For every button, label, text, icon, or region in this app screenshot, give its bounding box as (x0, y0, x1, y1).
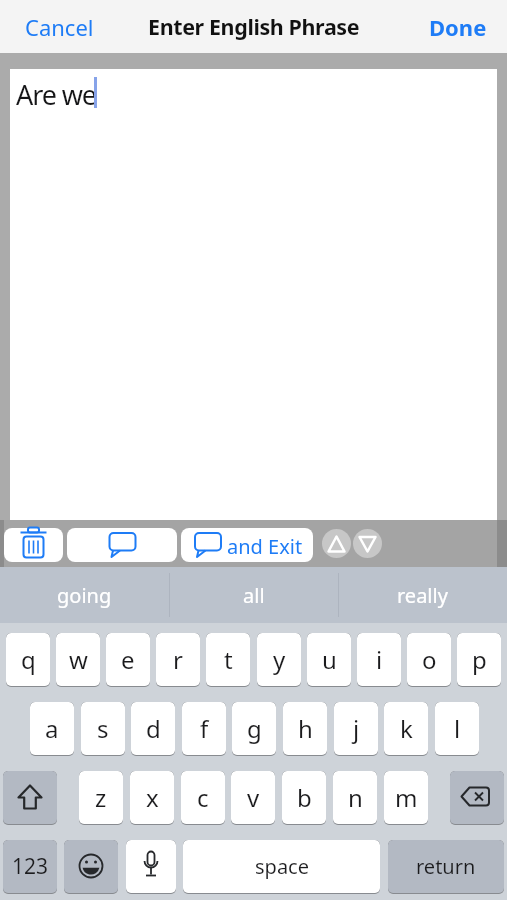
button[interactable] (126, 840, 176, 893)
staticText: f (200, 712, 209, 745)
staticText: going (57, 582, 112, 609)
button[interactable]: x (130, 771, 174, 824)
staticText: g (247, 712, 262, 745)
button[interactable]: going (0, 567, 169, 623)
staticText: q (21, 643, 36, 676)
button[interactable]: l (435, 702, 479, 755)
button[interactable] (3, 771, 57, 824)
button[interactable] (322, 529, 351, 558)
button[interactable] (10, 69, 497, 520)
button[interactable]: b (282, 771, 326, 824)
button[interactable]: really (338, 567, 507, 623)
staticText: z (95, 781, 107, 814)
button[interactable]: t (206, 633, 250, 686)
staticText: l (454, 712, 461, 745)
button[interactable] (450, 771, 504, 824)
staticText: d (146, 712, 161, 745)
button[interactable]: s (81, 702, 125, 755)
button[interactable]: i (357, 633, 401, 686)
staticText: space (255, 853, 309, 880)
staticText: n (348, 781, 363, 814)
staticText: u (322, 643, 337, 676)
button[interactable]: all (169, 567, 338, 623)
button[interactable] (353, 529, 382, 558)
button[interactable]: g (232, 702, 276, 755)
button[interactable]: e (106, 633, 150, 686)
staticText: a (45, 712, 59, 745)
staticText: 123 (12, 852, 49, 881)
button[interactable]: h (283, 702, 327, 755)
button[interactable]: w (56, 633, 100, 686)
staticText: all (243, 582, 265, 609)
button[interactable]: f (182, 702, 226, 755)
staticText: and Exit (227, 533, 303, 560)
button[interactable] (67, 528, 177, 562)
button[interactable]: c (181, 771, 225, 824)
button[interactable]: d (131, 702, 175, 755)
button[interactable]: Cancel (20, 7, 98, 47)
staticText: j (353, 712, 360, 745)
button[interactable]: 123 (3, 840, 57, 893)
staticText: y (273, 643, 286, 676)
staticText: c (197, 781, 209, 814)
button[interactable]: m (384, 771, 428, 824)
button[interactable]: Done (425, 7, 491, 47)
staticText: b (297, 781, 312, 814)
button[interactable] (64, 840, 118, 893)
staticText: s (97, 712, 109, 745)
staticText: m (395, 781, 418, 814)
staticText: h (298, 712, 313, 745)
staticText: i (376, 643, 383, 676)
staticText: Enter English Phrase (148, 12, 360, 41)
button[interactable]: return (388, 840, 504, 893)
button[interactable]: z (79, 771, 123, 824)
button[interactable]: space (183, 840, 380, 893)
staticText: v (247, 781, 260, 814)
button[interactable]: k (384, 702, 428, 755)
button[interactable]: y (257, 633, 301, 686)
button[interactable]: j (334, 702, 378, 755)
button[interactable]: n (333, 771, 377, 824)
staticText: Are we (16, 76, 96, 113)
button[interactable]: a (30, 702, 74, 755)
staticText: k (400, 712, 413, 745)
staticText: o (422, 643, 437, 676)
button[interactable] (181, 528, 313, 562)
staticText: x (146, 781, 159, 814)
button[interactable]: u (307, 633, 351, 686)
button[interactable]: v (231, 771, 275, 824)
staticText: Cancel (25, 12, 94, 42)
button[interactable]: q (6, 633, 50, 686)
button[interactable]: r (156, 633, 200, 686)
staticText: t (224, 643, 233, 676)
button[interactable]: o (407, 633, 451, 686)
button[interactable]: p (457, 633, 501, 686)
staticText: w (69, 643, 88, 676)
staticText: p (472, 643, 487, 676)
button[interactable] (4, 528, 63, 562)
staticText: r (173, 643, 183, 676)
staticText: e (121, 643, 135, 676)
staticText: return (416, 853, 476, 880)
staticText: really (397, 582, 448, 609)
staticText: Done (429, 12, 487, 42)
